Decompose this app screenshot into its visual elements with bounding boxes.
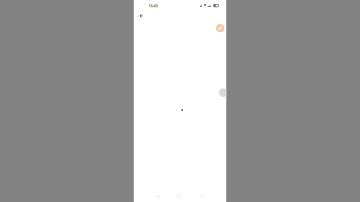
button[interactable]: Back <box>136 10 147 22</box>
staticText: 16:43 <box>149 3 158 8</box>
button[interactable]: Scroll to top <box>219 88 228 97</box>
button[interactable]: Assistant <box>217 24 224 32</box>
button[interactable]: Home <box>171 190 188 202</box>
